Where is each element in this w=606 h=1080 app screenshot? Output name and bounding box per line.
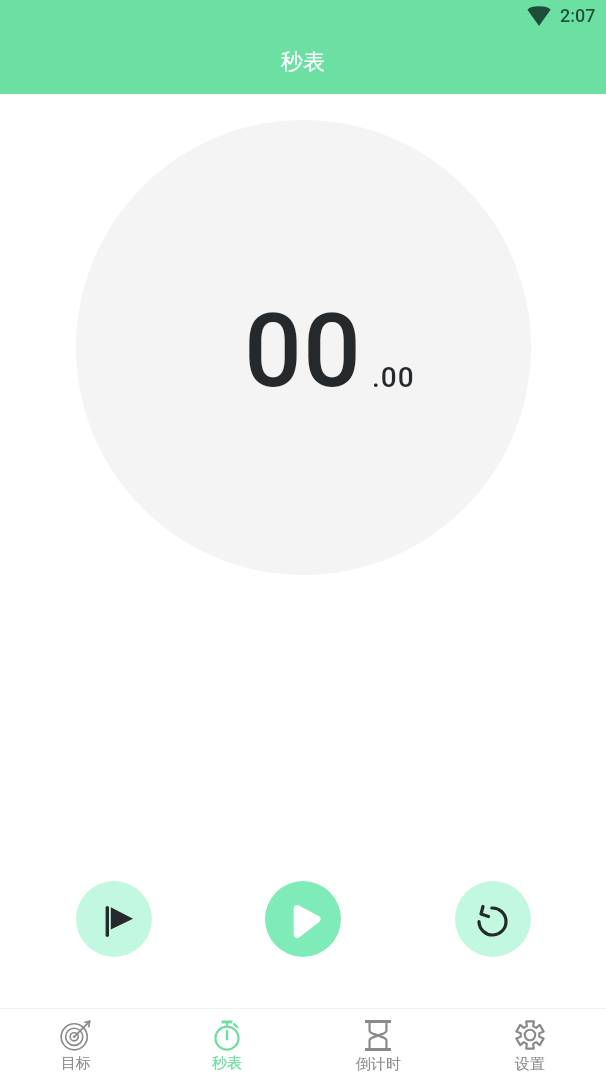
button[interactable]: Start: [265, 881, 341, 957]
staticText: 秒表: [212, 1054, 242, 1073]
button[interactable]: 秒表: [151, 1009, 302, 1080]
staticText: .00: [372, 361, 415, 394]
button[interactable]: Reset: [455, 881, 531, 957]
staticText: 设置: [515, 1055, 545, 1074]
staticText: 00: [244, 291, 362, 411]
button[interactable]: 倒计时: [302, 1009, 454, 1080]
button[interactable]: Lap: [76, 881, 152, 957]
staticText: 秒表: [281, 48, 325, 76]
staticText: 2:07: [560, 5, 596, 26]
staticText: 倒计时: [356, 1055, 401, 1074]
button[interactable]: 设置: [454, 1009, 606, 1080]
staticText: 目标: [61, 1054, 91, 1073]
button[interactable]: 目标: [0, 1009, 151, 1080]
